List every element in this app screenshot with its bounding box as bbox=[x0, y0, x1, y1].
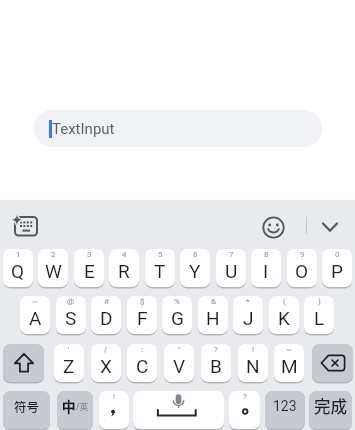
staticText: P bbox=[331, 260, 343, 282]
button[interactable]: 123 bbox=[265, 391, 305, 429]
staticText: J bbox=[243, 307, 254, 329]
staticText: 5 bbox=[158, 250, 163, 259]
staticText: 1 bbox=[16, 250, 21, 259]
staticText: 9 bbox=[300, 250, 305, 259]
staticText: /英 bbox=[76, 400, 89, 412]
button[interactable]: " bbox=[164, 344, 194, 382]
staticText: 6 bbox=[193, 250, 198, 259]
staticText: O bbox=[295, 260, 309, 282]
staticText: C bbox=[136, 355, 149, 377]
button[interactable]: 符号 bbox=[3, 391, 50, 429]
button[interactable]: 完成 bbox=[309, 391, 352, 429]
staticText: * bbox=[246, 297, 250, 306]
staticText: T bbox=[154, 260, 166, 282]
button[interactable]: ~ bbox=[20, 296, 50, 334]
staticText: TextInput bbox=[52, 120, 115, 138]
button[interactable]: 4 bbox=[109, 249, 139, 287]
staticText: 0 bbox=[335, 250, 340, 259]
staticText: V bbox=[173, 355, 186, 377]
staticText: 7 bbox=[229, 250, 234, 259]
button[interactable]: 5 bbox=[145, 249, 175, 287]
button[interactable]: 2 bbox=[38, 249, 68, 287]
staticText: U bbox=[225, 260, 238, 282]
button[interactable] bbox=[320, 218, 340, 236]
staticText: D bbox=[100, 307, 113, 329]
button[interactable]: ( bbox=[269, 296, 299, 334]
staticText: S bbox=[65, 307, 77, 329]
staticText: L bbox=[314, 307, 325, 329]
staticText: I bbox=[263, 260, 269, 282]
staticText: 中 bbox=[62, 396, 76, 416]
button[interactable]: % bbox=[162, 296, 192, 334]
button[interactable]: @ bbox=[56, 296, 86, 334]
button[interactable]: ) bbox=[304, 296, 334, 334]
staticText: G bbox=[171, 307, 184, 329]
button[interactable]: : bbox=[127, 344, 157, 382]
staticText: # bbox=[104, 297, 109, 306]
staticText: W bbox=[45, 260, 62, 282]
staticText: A bbox=[29, 307, 42, 329]
button[interactable]: ' bbox=[54, 344, 84, 382]
button[interactable]: ~ bbox=[274, 344, 304, 382]
staticText: 2 bbox=[51, 250, 56, 259]
button[interactable]: 1 bbox=[3, 249, 33, 287]
button[interactable] bbox=[312, 344, 353, 382]
staticText: 8 bbox=[264, 250, 269, 259]
button[interactable]: & bbox=[198, 296, 228, 334]
button[interactable] bbox=[262, 216, 285, 239]
staticText: M bbox=[281, 355, 298, 377]
staticText: ! bbox=[252, 345, 255, 354]
button[interactable]: # bbox=[91, 296, 121, 334]
staticText: Q bbox=[11, 260, 25, 282]
staticText: ' bbox=[68, 345, 70, 354]
staticText: E bbox=[84, 260, 95, 282]
staticText: 完成 bbox=[314, 394, 347, 418]
button[interactable]: ! bbox=[238, 344, 268, 382]
staticText: ) bbox=[318, 297, 321, 306]
button[interactable]: ? bbox=[201, 344, 231, 382]
staticText: 符号 bbox=[14, 397, 40, 415]
staticText: & bbox=[211, 297, 216, 306]
button[interactable]: 8 bbox=[251, 249, 281, 287]
staticText: Y bbox=[189, 260, 201, 282]
staticText: ? bbox=[214, 345, 218, 354]
staticText: % bbox=[174, 297, 180, 306]
button[interactable]: 7 bbox=[216, 249, 246, 287]
button[interactable]: TextInput bbox=[34, 110, 322, 147]
button[interactable] bbox=[10, 211, 40, 239]
staticText: : bbox=[141, 345, 143, 354]
staticText: ? bbox=[243, 392, 247, 401]
staticText: K bbox=[278, 307, 290, 329]
button[interactable]: $ bbox=[127, 296, 157, 334]
staticText: $ bbox=[140, 297, 145, 306]
button[interactable] bbox=[3, 344, 44, 382]
staticText: ~ bbox=[286, 345, 292, 354]
button[interactable]: * bbox=[233, 296, 263, 334]
button[interactable]: 0 bbox=[322, 249, 352, 287]
button[interactable]: 中 bbox=[57, 391, 93, 429]
staticText: " bbox=[178, 345, 181, 354]
button[interactable]: / bbox=[91, 344, 121, 382]
staticText: H bbox=[206, 307, 220, 329]
staticText: / bbox=[104, 345, 108, 354]
button[interactable]: ? bbox=[229, 391, 260, 429]
staticText: @ bbox=[67, 297, 75, 306]
staticText: ~ bbox=[32, 297, 38, 306]
staticText: N bbox=[246, 355, 260, 377]
button[interactable] bbox=[133, 391, 224, 429]
staticText: 4 bbox=[122, 250, 127, 259]
staticText: ( bbox=[283, 297, 286, 306]
staticText: Z bbox=[63, 355, 75, 377]
staticText: B bbox=[210, 355, 222, 377]
staticText: 123 bbox=[273, 398, 297, 414]
staticText: R bbox=[118, 260, 130, 282]
button[interactable]: 9 bbox=[287, 249, 317, 287]
button[interactable]: 6 bbox=[180, 249, 210, 287]
staticText: X bbox=[100, 355, 112, 377]
staticText: ! bbox=[113, 392, 116, 401]
button[interactable]: ! bbox=[99, 391, 129, 429]
staticText: F bbox=[137, 307, 148, 329]
staticText: 3 bbox=[87, 250, 92, 259]
button[interactable]: 3 bbox=[74, 249, 104, 287]
